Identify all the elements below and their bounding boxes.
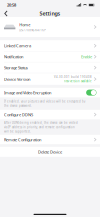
button[interactable]: Configure DDNS bbox=[0, 110, 100, 119]
staticText: Storage Status bbox=[4, 65, 28, 70]
button[interactable]: Device Version bbox=[0, 73, 100, 85]
staticText: 20:58 bbox=[7, 2, 16, 8]
button[interactable]: Storage Status bbox=[0, 62, 100, 73]
staticText: Enable bbox=[81, 54, 92, 59]
staticText: Configure DDNS bbox=[4, 112, 33, 117]
button[interactable]: Linked Camera bbox=[0, 40, 100, 51]
staticText: Settings bbox=[39, 10, 60, 17]
staticText: new version available bbox=[64, 79, 92, 83]
staticText: Linked Camera bbox=[4, 43, 31, 48]
staticText: Image and Video Encryption bbox=[4, 90, 51, 95]
staticText: will be supported. bbox=[4, 130, 31, 133]
staticText: Notification bbox=[4, 54, 23, 59]
staticText: Delete Device bbox=[38, 149, 62, 154]
staticText: If enabled, your pictures and videos wil… bbox=[4, 100, 85, 103]
staticText: Remote Configuration bbox=[4, 137, 41, 142]
staticText: via IP address in priority, and remote c… bbox=[4, 125, 75, 129]
button[interactable]: Remote Configuration bbox=[0, 135, 100, 144]
button[interactable]: Home bbox=[0, 17, 100, 37]
staticText: the device password. bbox=[4, 104, 32, 107]
staticText: DS-7708NI-K4/16P bbox=[19, 28, 46, 32]
staticText: After DDNS being enabled, the device can… bbox=[4, 121, 78, 124]
button[interactable]: Image and Video Encryption bbox=[0, 88, 100, 97]
staticText: Device Version bbox=[4, 76, 30, 82]
staticText: V4.30.001 build 190408 bbox=[54, 75, 92, 79]
button[interactable]: Back bbox=[0, 10, 13, 17]
staticText: Home bbox=[19, 22, 30, 27]
button[interactable]: Delete Device bbox=[0, 147, 100, 157]
button[interactable]: Notification bbox=[0, 51, 100, 62]
